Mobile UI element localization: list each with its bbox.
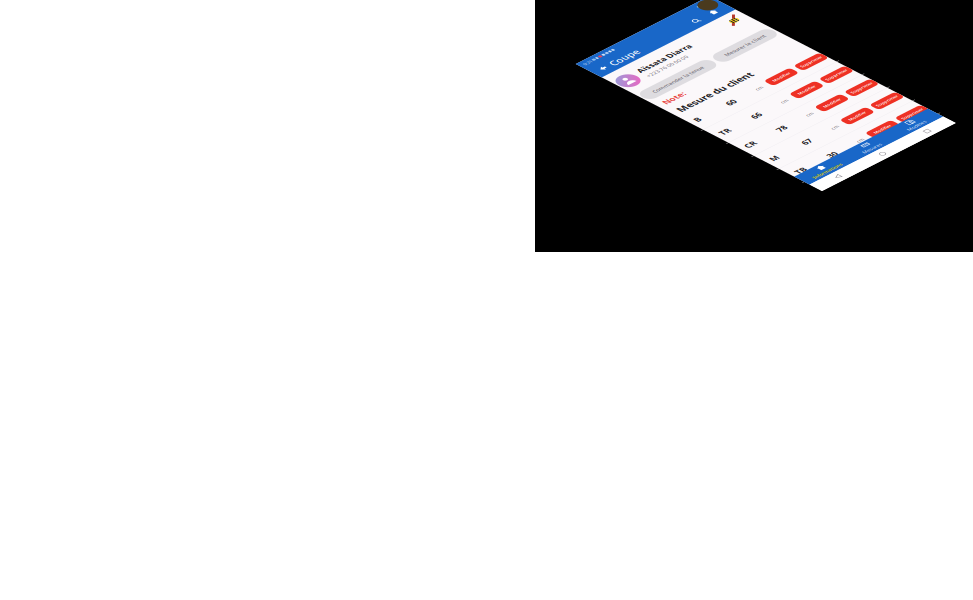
staticText: Aïssata Diarra (599, 92, 740, 118)
button[interactable]: Back (539, 26, 581, 71)
button[interactable]: Search (789, 26, 835, 71)
staticText: Mesure du client (551, 247, 749, 279)
button[interactable]: Home (835, 26, 881, 71)
button[interactable]: Mesurer le client (735, 161, 891, 199)
staticText: Mesurer le client (759, 171, 866, 189)
staticText: Coupe (581, 33, 655, 64)
staticText: +223 76 00 00 00 (599, 121, 707, 139)
